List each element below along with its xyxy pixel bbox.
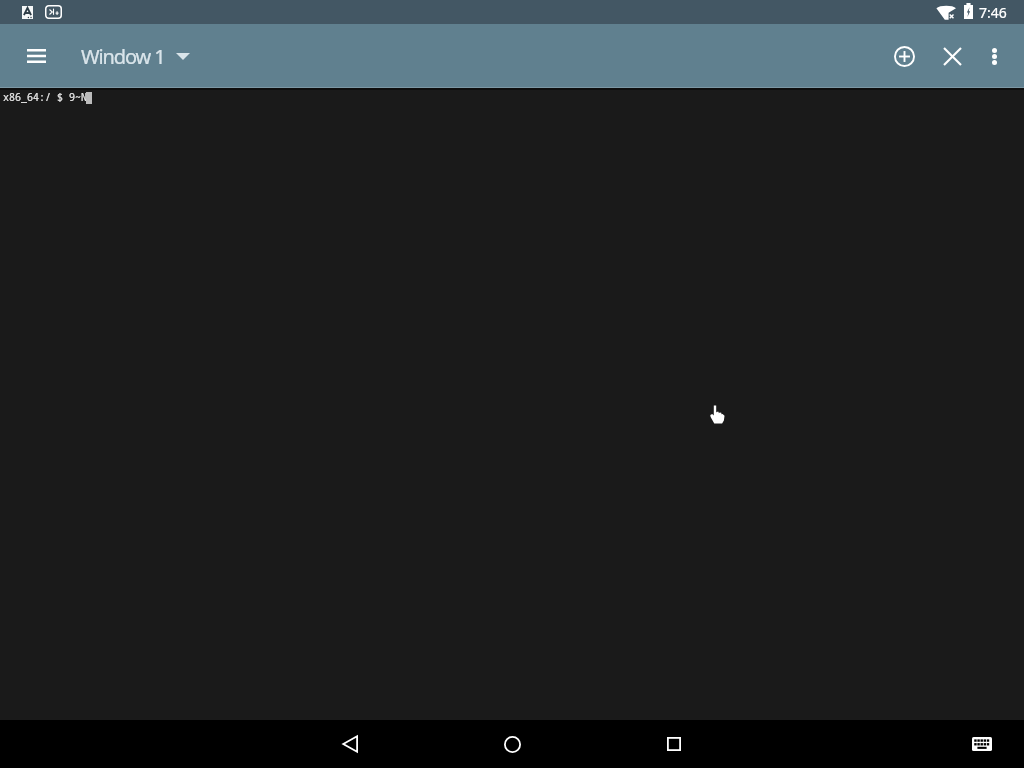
- button[interactable]: Window 1: [74, 24, 200, 88]
- button[interactable]: Recent apps: [626, 720, 722, 768]
- staticText: x86_64:/ $ 9~N: [3, 90, 87, 104]
- button[interactable]: Home: [464, 720, 560, 768]
- button[interactable]: New window: [880, 24, 928, 88]
- button[interactable]: Switch keyboard: [958, 720, 1006, 768]
- staticText: 7:46: [979, 3, 1007, 22]
- staticText: Window 1: [81, 43, 165, 70]
- button[interactable]: Close window: [928, 24, 976, 88]
- button[interactable]: Navigation menu: [9, 24, 63, 88]
- button[interactable]: Back: [302, 720, 398, 768]
- button[interactable]: Terminal output: [0, 0, 1024, 768]
- button[interactable]: More options: [974, 24, 1014, 88]
